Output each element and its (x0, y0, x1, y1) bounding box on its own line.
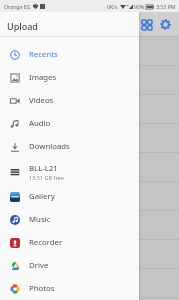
button[interactable]: Recents (0, 43, 139, 66)
button[interactable]: Images (0, 66, 139, 89)
button[interactable]: Recorder (0, 231, 139, 254)
staticText: Gallery (29, 191, 55, 202)
button[interactable]: Drive (0, 254, 139, 277)
button[interactable]: Settings (159, 18, 172, 31)
staticText: Orange EG (4, 3, 31, 10)
button[interactable]: Music (0, 208, 139, 231)
button[interactable]: Photos (0, 277, 139, 300)
staticText: Drive (29, 260, 49, 271)
staticText: Photos (29, 283, 55, 294)
staticText: 13.51 GB free (29, 174, 64, 181)
staticText: Upload (7, 20, 38, 32)
staticText: Images (29, 72, 57, 83)
button[interactable]: Downloads (0, 135, 139, 158)
button[interactable]: Audio (0, 112, 139, 135)
staticText: Recents (29, 49, 58, 60)
staticText: Downloads (29, 141, 70, 152)
staticText: BLL-L21 (29, 163, 58, 174)
button[interactable]: Gallery (0, 185, 139, 208)
staticText: 0K/s (107, 3, 118, 10)
staticText: Music (29, 214, 51, 225)
staticText: 3:53 PM (156, 3, 176, 10)
button[interactable]: Grid view (140, 18, 153, 31)
staticText: Recorder (29, 237, 63, 248)
staticText: Audio (29, 118, 51, 129)
staticText: Videos (29, 95, 54, 106)
button[interactable]: Videos (0, 89, 139, 112)
staticText: 90% (134, 3, 145, 10)
button[interactable]: BLL-L21 (0, 158, 139, 185)
